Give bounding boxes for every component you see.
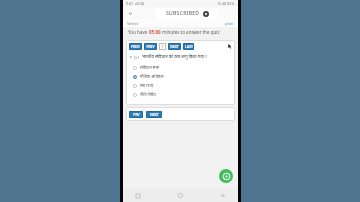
button[interactable]: Home [176,191,185,200]
button[interactable]: संविधान सभा [133,65,232,70]
staticText: भारतीय संविधान को कब लागू किया गया ? [142,54,207,60]
staticText: PRV [133,112,140,117]
staticText: minutes to answer the quiz [161,29,220,35]
staticText: मौलिक अधिकार [140,74,164,79]
staticText: 05:00 [149,29,161,35]
staticText: 9:41 ull 4G [126,1,145,6]
staticText: 1 [161,44,164,49]
other: Notifications [203,11,209,17]
staticText: plan [225,21,234,26]
button[interactable]: NEXT [146,111,162,118]
staticText: FIRST [131,44,140,49]
button[interactable]: Expand [126,9,134,17]
button[interactable]: नीति निर्देश [133,92,232,97]
button[interactable]: LAST [183,43,194,50]
button[interactable]: Recent apps [133,191,142,200]
button[interactable]: Back [219,191,228,200]
staticText: SUBSCRIBED [166,10,200,17]
button[interactable]: FIRST [129,43,142,50]
staticText: संविधान सभा [140,65,160,70]
button[interactable]: PREV [144,43,157,50]
staticText: % 4G 82% [218,1,235,6]
button[interactable]: मौलिक अधिकार [133,74,232,79]
staticText: You have [128,29,149,35]
button[interactable]: WhatsApp [219,169,233,183]
staticText: नीति निर्देश [140,92,156,97]
staticText: संघ राज्य [140,83,154,88]
staticText: NEXT [150,112,159,117]
button[interactable]: SUBSCRIBED [156,8,218,19]
button[interactable]: 1 [159,43,166,50]
staticText: LAST [185,44,193,49]
button[interactable]: संघ राज्य [133,83,232,88]
staticText: Q.1 [134,55,140,60]
staticText: Select [127,21,139,26]
button[interactable]: NEXT [168,43,181,50]
button[interactable]: PRV [129,111,143,118]
staticText: NEXT [170,44,179,49]
staticText: PREV [146,44,155,49]
